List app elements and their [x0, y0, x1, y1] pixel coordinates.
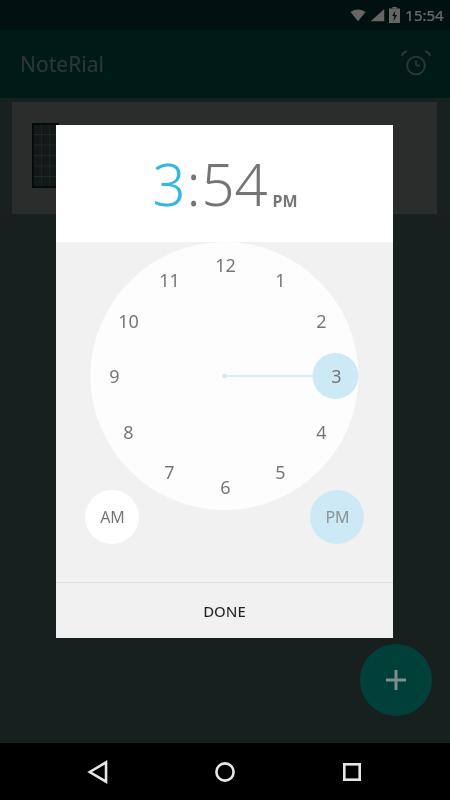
staticText: 9 [109, 364, 120, 389]
staticText: 5 [275, 460, 286, 485]
button[interactable]: 3 [315, 355, 357, 397]
button[interactable]: 8 [107, 411, 149, 453]
button[interactable]: DONE [56, 583, 393, 638]
button[interactable]: 54 [201, 144, 268, 223]
button[interactable]: Back [71, 744, 127, 800]
staticText: 10 [118, 309, 139, 334]
button[interactable]: PM [310, 490, 364, 544]
staticText: 4 [316, 420, 327, 445]
staticText: 11 [159, 268, 180, 293]
staticText: PM [272, 190, 298, 212]
staticText: 3 [152, 144, 186, 223]
staticText: AM [100, 506, 125, 528]
button[interactable]: Home [197, 744, 253, 800]
button[interactable]: Alarm [394, 42, 438, 86]
staticText: NoteRial [20, 50, 104, 79]
button[interactable]: AM [85, 490, 139, 544]
staticText: 6 [220, 475, 231, 500]
button[interactable]: 12 [204, 244, 246, 286]
staticText: 1 [275, 268, 286, 293]
button[interactable] [12, 102, 437, 214]
button[interactable]: 9 [93, 355, 135, 397]
button[interactable]: 1 [259, 259, 301, 301]
staticText: 54 [201, 144, 268, 223]
button[interactable]: 2 [300, 300, 342, 342]
button[interactable]: 5 [259, 451, 301, 493]
staticText: 7 [164, 460, 175, 485]
staticText: : [186, 144, 201, 223]
button[interactable]: Recent apps [324, 744, 380, 800]
staticText: 15:54 [405, 5, 444, 25]
staticText: PM [325, 506, 350, 528]
button[interactable]: 6 [204, 466, 246, 508]
staticText: DONE [203, 601, 246, 621]
staticText: 8 [123, 420, 134, 445]
button[interactable]: 3 [152, 144, 186, 223]
staticText: 12 [215, 253, 236, 278]
button[interactable]: 11 [148, 259, 190, 301]
button[interactable]: 4 [300, 411, 342, 453]
button[interactable]: 10 [107, 300, 149, 342]
button[interactable]: Add note [360, 644, 432, 716]
button[interactable]: 7 [148, 451, 190, 493]
staticText: 3 [331, 364, 342, 389]
staticText: 2 [316, 309, 327, 334]
